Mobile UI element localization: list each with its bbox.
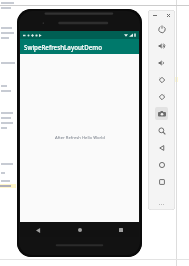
button[interactable]: Close [165, 12, 172, 19]
button[interactable]: Home [74, 224, 86, 236]
button[interactable]: Extended controls [148, 198, 175, 210]
button[interactable]: Take screenshot [149, 105, 174, 122]
button[interactable]: Zoom [149, 122, 174, 139]
button[interactable]: Home [149, 156, 174, 173]
button[interactable]: Overview [149, 173, 174, 190]
button[interactable]: Rotate left [149, 71, 174, 88]
staticText: SwipeRefreshLayoutDemo [24, 43, 102, 51]
button[interactable]: Volume down [149, 54, 174, 71]
staticText: After Refresh Hello World [55, 135, 105, 141]
button[interactable]: Volume up [149, 37, 174, 54]
button[interactable]: Back [149, 139, 174, 156]
button[interactable]: Minimize [151, 12, 158, 19]
button[interactable]: Back [32, 224, 44, 236]
button[interactable]: Rotate right [149, 88, 174, 105]
button[interactable]: Recent apps [115, 224, 127, 236]
button[interactable]: Power [149, 20, 174, 37]
